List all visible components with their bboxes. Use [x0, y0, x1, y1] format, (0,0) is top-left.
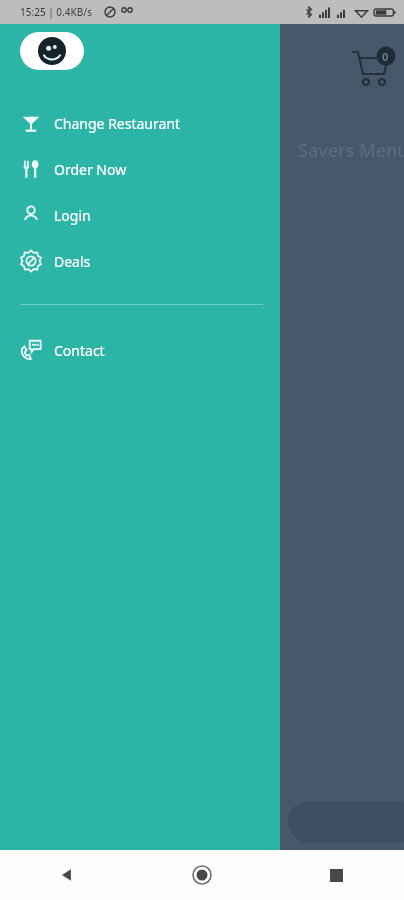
staticText: 15:25 | 0.4KB/s — [20, 5, 93, 19]
staticText: Order Now — [54, 160, 127, 179]
staticText: 0 — [382, 49, 389, 64]
button[interactable]: Back — [0, 850, 134, 900]
button[interactable]: Restaurant logo — [20, 32, 84, 70]
staticText: Change Restaurant — [54, 114, 181, 133]
button[interactable]: Login — [0, 192, 280, 238]
button[interactable]: Cart — [348, 42, 394, 88]
button[interactable]: Deals — [0, 238, 280, 284]
button[interactable]: Order Now — [0, 146, 280, 192]
staticText: Contact — [54, 341, 105, 360]
staticText: Savers Menu — [298, 138, 404, 163]
staticText: Login — [54, 206, 91, 225]
button[interactable]: Contact — [0, 327, 280, 373]
staticText: Deals — [54, 252, 91, 271]
button[interactable]: Change Restaurant — [0, 100, 280, 146]
button[interactable]: Home — [134, 850, 269, 900]
button[interactable]: Recents — [269, 850, 404, 900]
